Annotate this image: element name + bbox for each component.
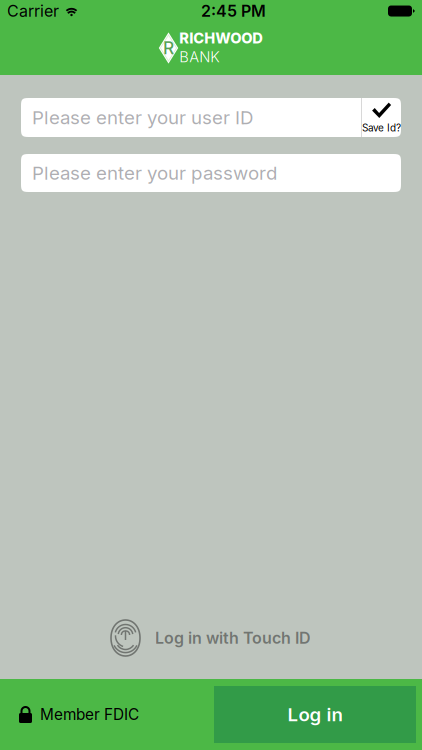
button[interactable]: Log in with Touch ID [111,620,311,656]
button[interactable]: Please enter your user ID [21,98,361,137]
button[interactable]: Please enter your password [21,154,401,192]
staticText: Please enter your user ID [32,106,253,129]
staticText: Please enter your password [32,162,277,184]
button[interactable]: Save Id? [362,98,401,137]
staticText: Log in [287,703,342,726]
staticText: RICHWOOD [179,29,263,47]
staticText: 2:45 PM [201,1,266,21]
staticText: Log in with Touch ID [155,628,311,648]
staticText: Carrier [7,1,59,21]
button[interactable]: Log in [214,686,416,743]
staticText: Save Id? [362,122,401,134]
staticText: Member FDIC [40,705,139,724]
staticText: R [163,37,174,58]
staticText: BANK [179,48,219,66]
